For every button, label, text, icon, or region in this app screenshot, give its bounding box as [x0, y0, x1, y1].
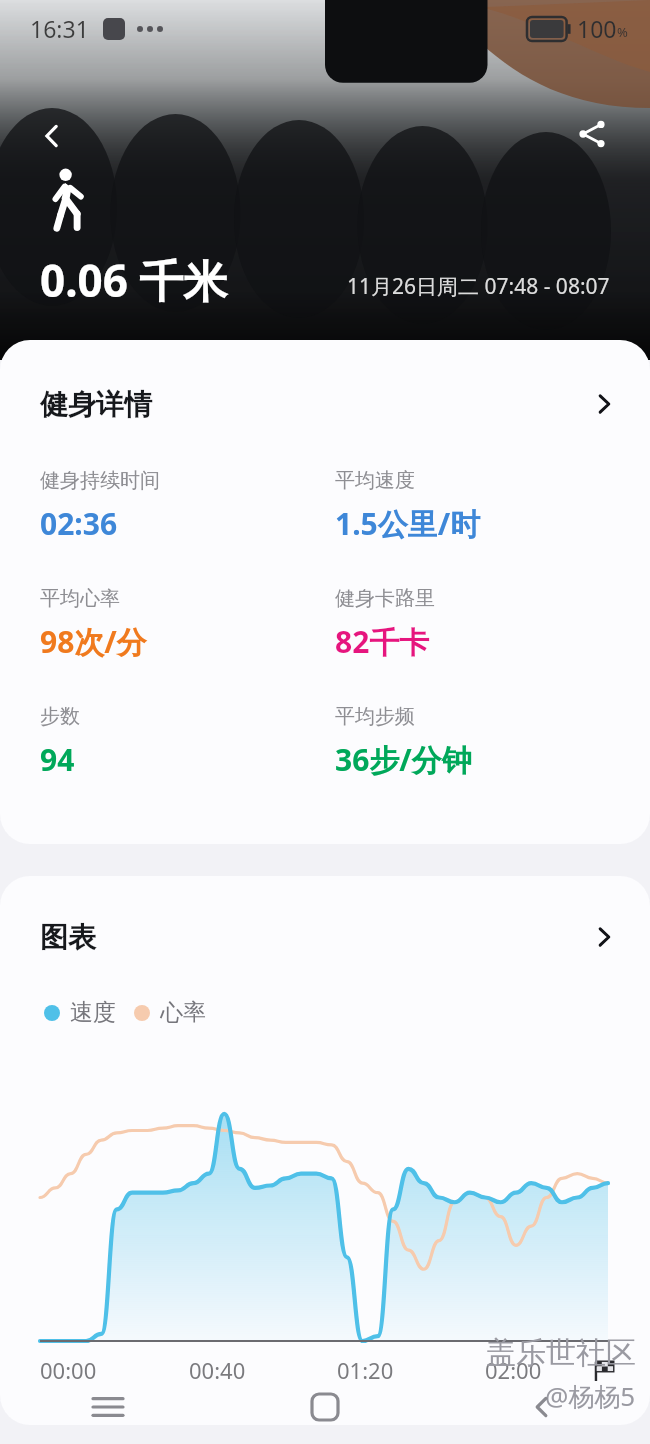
staticText: 00:00 [40, 1355, 97, 1385]
staticText: 图表 [40, 920, 96, 955]
staticText: 平均速度 [335, 468, 415, 493]
staticText: 94 [40, 739, 75, 780]
button[interactable]: 健身详情 [0, 340, 650, 468]
staticText: @杨杨5 [545, 1378, 636, 1414]
staticText: 平均步频 [335, 704, 415, 729]
staticText: 心率 [160, 998, 206, 1027]
staticText: 健身卡路里 [335, 586, 435, 611]
staticText: 98次/分 [40, 621, 147, 662]
button[interactable]: Back [24, 108, 80, 164]
button[interactable]: Back [433, 1370, 650, 1444]
staticText: % [617, 23, 628, 41]
staticText: 01:20 [337, 1355, 394, 1385]
staticText: 11月26日周二 07:48 - 08:07 [347, 272, 610, 301]
staticText: 健身详情 [40, 387, 152, 422]
staticText: 步数 [40, 704, 80, 729]
staticText: 00:40 [189, 1355, 246, 1385]
staticText: 0.06 千米 [40, 250, 228, 310]
staticText: 02:00 [485, 1355, 542, 1385]
button[interactable]: 图表 [0, 876, 650, 998]
staticText: 16:31 [30, 13, 89, 44]
button[interactable]: Recents [0, 1370, 216, 1444]
staticText: 1.5公里/时 [335, 503, 481, 544]
staticText: 平均心率 [40, 586, 120, 611]
staticText: 盖乐世社区 [486, 1334, 636, 1372]
button[interactable]: Share [564, 106, 620, 162]
staticText: 02:36 [40, 503, 118, 544]
staticText: 100 [577, 13, 617, 44]
staticText: 82千卡 [335, 621, 430, 662]
button[interactable]: Home [216, 1370, 433, 1444]
staticText: 36步/分钟 [335, 739, 472, 780]
staticText: 速度 [70, 998, 116, 1027]
staticText: 健身持续时间 [40, 468, 160, 493]
